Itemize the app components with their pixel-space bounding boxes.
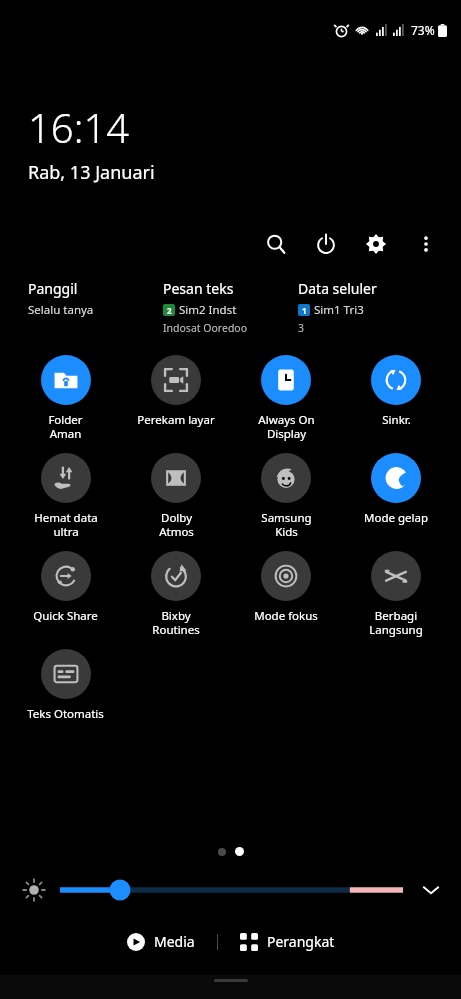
button[interactable]: More options — [409, 227, 443, 261]
staticText: Indosat Ooredoo — [163, 321, 248, 335]
staticText: Always On Display — [258, 412, 315, 441]
staticText: Pesan teks — [163, 279, 234, 298]
button[interactable]: Samsung Kids — [231, 447, 341, 545]
button[interactable]: Page 1 — [218, 848, 226, 856]
button[interactable]: Quick Share — [10, 545, 121, 630]
button[interactable]: Perekam layar — [121, 349, 231, 434]
button[interactable]: Pesan teks — [163, 279, 298, 335]
button[interactable]: Settings — [359, 227, 393, 261]
button[interactable]: Mode fokus — [231, 545, 341, 630]
staticText: Mode fokus — [254, 608, 318, 624]
staticText: Selalu tanya — [28, 302, 94, 318]
staticText: Sim1 Tri3 — [314, 302, 364, 318]
staticText: Perekam layar — [137, 412, 215, 428]
staticText: 3 — [298, 321, 305, 335]
staticText: Quick Share — [33, 608, 98, 624]
staticText: 16:14 — [28, 100, 130, 154]
staticText: Bixby Routines — [152, 608, 200, 637]
staticText: 1 — [302, 305, 307, 316]
staticText: Panggil — [28, 279, 78, 298]
staticText: Media — [154, 932, 195, 951]
button[interactable]: Bixby Routines — [121, 545, 231, 643]
staticText: Rab, 13 Januari — [28, 160, 155, 185]
button[interactable]: Dolby Atmos — [121, 447, 231, 545]
button[interactable]: Folder Aman — [10, 349, 121, 447]
button[interactable]: Expand brightness settings — [415, 874, 447, 906]
staticText: Sinkr. — [382, 412, 411, 428]
staticText: Samsung Kids — [261, 510, 312, 539]
staticText: Berbagi Langsung — [369, 608, 423, 637]
button[interactable]: Teks Otomatis — [10, 643, 121, 728]
button[interactable]: Mode gelap — [341, 447, 451, 532]
staticText: Teks Otomatis — [27, 706, 104, 722]
button[interactable]: Always On Display — [231, 349, 341, 447]
staticText: Folder Aman — [48, 412, 83, 441]
staticText: Mode gelap — [364, 510, 428, 526]
button[interactable]: Perangkat — [232, 926, 343, 957]
staticText: Hemat data ultra — [34, 510, 98, 539]
button[interactable]: Sinkr. — [341, 349, 451, 434]
button[interactable]: Search — [259, 227, 293, 261]
staticText: Dolby Atmos — [159, 510, 194, 539]
button[interactable]: Page 2 — [235, 847, 244, 856]
button[interactable]: Berbagi Langsung — [341, 545, 451, 643]
button[interactable]: Power — [309, 227, 343, 261]
button[interactable]: Media — [119, 926, 203, 957]
button[interactable]: Hemat data ultra — [10, 447, 121, 545]
button[interactable]: Data seluler — [298, 279, 433, 335]
button[interactable]: Brightness — [60, 877, 403, 903]
staticText: 73% — [411, 22, 435, 38]
staticText: 2 — [167, 305, 172, 316]
staticText: Sim2 Indst — [179, 302, 237, 318]
staticText: Data seluler — [298, 279, 377, 298]
staticText: Perangkat — [267, 932, 335, 951]
button[interactable]: Panggil — [28, 279, 163, 318]
